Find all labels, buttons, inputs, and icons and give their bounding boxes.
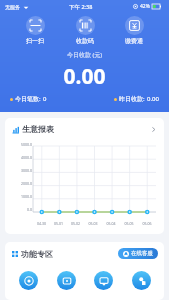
staticText: 05-01 xyxy=(50,221,67,226)
staticText: 1000.0 xyxy=(9,194,32,199)
staticText: 缴费通 xyxy=(125,37,143,45)
staticText: 2000.0 xyxy=(9,181,32,186)
button[interactable]: 商户服务 xyxy=(126,266,156,294)
button[interactable]: 扫一扫 xyxy=(13,15,57,46)
staticText: 0 xyxy=(43,95,47,103)
button[interactable]: 收款码 xyxy=(63,15,107,46)
staticText: 3000.0 xyxy=(9,168,32,173)
button[interactable]: 交易查询 xyxy=(88,266,118,294)
staticText: 收款码 xyxy=(76,37,94,45)
staticText: 04-30 xyxy=(33,221,50,226)
button[interactable]: 门店收款 xyxy=(13,266,43,294)
staticText: 4000.0 xyxy=(9,155,32,160)
staticText: 05-02 xyxy=(67,221,84,226)
button[interactable]: 收款记录 xyxy=(51,266,81,294)
staticText: 昨日收款: xyxy=(119,95,145,103)
other: 查看生意报表 xyxy=(150,126,157,133)
staticText: 05-03 xyxy=(84,221,102,226)
staticText: 05-04 xyxy=(102,221,120,226)
button[interactable]: 生意报表 xyxy=(5,118,164,140)
staticText: 下午 2:38 xyxy=(69,3,93,11)
button[interactable]: 缴费通 xyxy=(112,15,156,46)
staticText: 5000.0 xyxy=(9,142,32,147)
staticText: 今日笔数: xyxy=(15,95,41,103)
staticText: 0.0 xyxy=(9,207,32,212)
button[interactable]: 在线客服 xyxy=(118,248,158,259)
staticText: 0.00 xyxy=(0,62,169,91)
staticText: 扫一扫 xyxy=(26,37,44,45)
staticText: 05-06 xyxy=(138,221,156,226)
staticText: 05-05 xyxy=(120,221,138,226)
staticText: 0.00 xyxy=(147,95,159,103)
staticText: 无服务 xyxy=(5,4,20,10)
staticText: 42% xyxy=(140,3,150,10)
staticText: 在线客服 xyxy=(131,250,153,257)
staticText: 功能专区 xyxy=(21,249,53,259)
staticText: 生意报表 xyxy=(22,124,54,134)
staticText: 今日收款 (元) xyxy=(0,51,169,59)
